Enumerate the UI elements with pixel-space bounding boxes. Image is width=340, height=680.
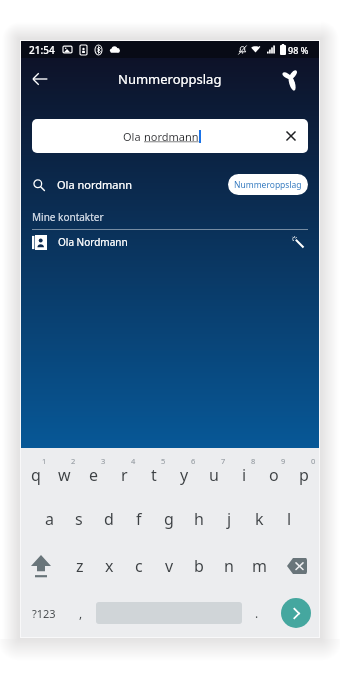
button[interactable]: 6: [169, 448, 199, 495]
staticText: 3: [101, 456, 106, 466]
staticText: 4: [131, 456, 136, 466]
staticText: l: [287, 508, 292, 530]
staticText: y: [180, 464, 189, 486]
staticText: d: [104, 508, 114, 530]
button[interactable]: m: [244, 542, 274, 589]
button[interactable]: a: [35, 495, 64, 542]
staticText: g: [164, 508, 174, 530]
staticText: 1: [42, 456, 47, 466]
staticText: s: [75, 508, 83, 530]
staticText: Ola: [123, 129, 144, 144]
staticText: f: [136, 508, 142, 530]
button[interactable]: Ola Nordmann: [32, 230, 308, 254]
button[interactable]: ?123: [21, 589, 66, 637]
staticText: ,: [79, 605, 83, 621]
button[interactable]: Nummeroppslag: [228, 174, 308, 195]
button[interactable]: b: [184, 542, 214, 589]
staticText: Ola nordmann: [57, 177, 133, 192]
button[interactable]: d: [94, 495, 124, 542]
button[interactable]: l: [274, 495, 304, 542]
staticText: v: [165, 555, 174, 577]
staticText: 0: [311, 456, 316, 466]
button[interactable]: k: [244, 495, 274, 542]
staticText: e: [89, 464, 99, 486]
button[interactable]: Back: [27, 66, 53, 92]
button[interactable]: 4: [109, 448, 139, 495]
button[interactable]: 7: [199, 448, 229, 495]
button[interactable]: 5: [139, 448, 169, 495]
staticText: n: [224, 555, 234, 577]
staticText: h: [194, 508, 204, 530]
staticText: r: [121, 464, 128, 486]
staticText: j: [227, 508, 232, 530]
staticText: i: [242, 464, 247, 486]
staticText: o: [269, 464, 279, 486]
button[interactable]: c: [124, 542, 154, 589]
staticText: 98 %: [288, 44, 309, 56]
button[interactable]: Backspace: [274, 542, 319, 589]
staticText: c: [135, 555, 143, 577]
button[interactable]: j: [214, 495, 244, 542]
button[interactable]: Ola: [32, 119, 308, 153]
button[interactable]: v: [154, 542, 184, 589]
staticText: u: [209, 464, 219, 486]
staticText: 7: [221, 456, 226, 466]
button[interactable]: 9: [259, 448, 289, 495]
staticText: k: [255, 508, 264, 530]
button[interactable]: Shift: [21, 542, 65, 589]
button[interactable]: ,: [66, 589, 96, 637]
button[interactable]: 0: [289, 448, 319, 495]
staticText: x: [105, 555, 114, 577]
staticText: .: [255, 605, 259, 621]
staticText: z: [76, 555, 84, 577]
staticText: m: [252, 555, 267, 577]
staticText: Mine kontakter: [32, 210, 104, 224]
staticText: Ola Nordmann: [58, 235, 128, 249]
staticText: ?123: [32, 606, 56, 621]
button[interactable]: g: [154, 495, 184, 542]
button[interactable]: z: [65, 542, 94, 589]
button[interactable]: n: [214, 542, 244, 589]
button[interactable]: .: [242, 589, 272, 637]
button[interactable]: s: [64, 495, 94, 542]
button[interactable]: Go: [281, 598, 311, 628]
button[interactable]: h: [184, 495, 214, 542]
staticText: 2: [71, 456, 76, 466]
button[interactable]: Clear text: [280, 125, 302, 147]
button[interactable]: 2: [50, 448, 79, 495]
staticText: a: [45, 508, 54, 530]
staticText: b: [194, 555, 204, 577]
button[interactable]: f: [124, 495, 154, 542]
staticText: w: [58, 464, 71, 486]
staticText: 8: [251, 456, 256, 466]
staticText: 21:54: [29, 43, 55, 57]
staticText: 5: [161, 456, 166, 466]
button[interactable]: Telenor: [276, 65, 304, 93]
button[interactable]: 1: [21, 448, 50, 495]
staticText: 9: [281, 456, 286, 466]
button[interactable]: 8: [229, 448, 259, 495]
staticText: 6: [191, 456, 196, 466]
staticText: Nummeroppslag: [234, 179, 302, 191]
staticText: nordmann: [144, 129, 199, 144]
staticText: p: [299, 464, 309, 486]
staticText: Nummeroppslag: [118, 70, 222, 88]
staticText: q: [31, 464, 41, 486]
button[interactable]: 3: [79, 448, 109, 495]
button[interactable]: Ola nordmann: [33, 174, 308, 195]
staticText: t: [151, 464, 157, 486]
button[interactable]: x: [94, 542, 124, 589]
